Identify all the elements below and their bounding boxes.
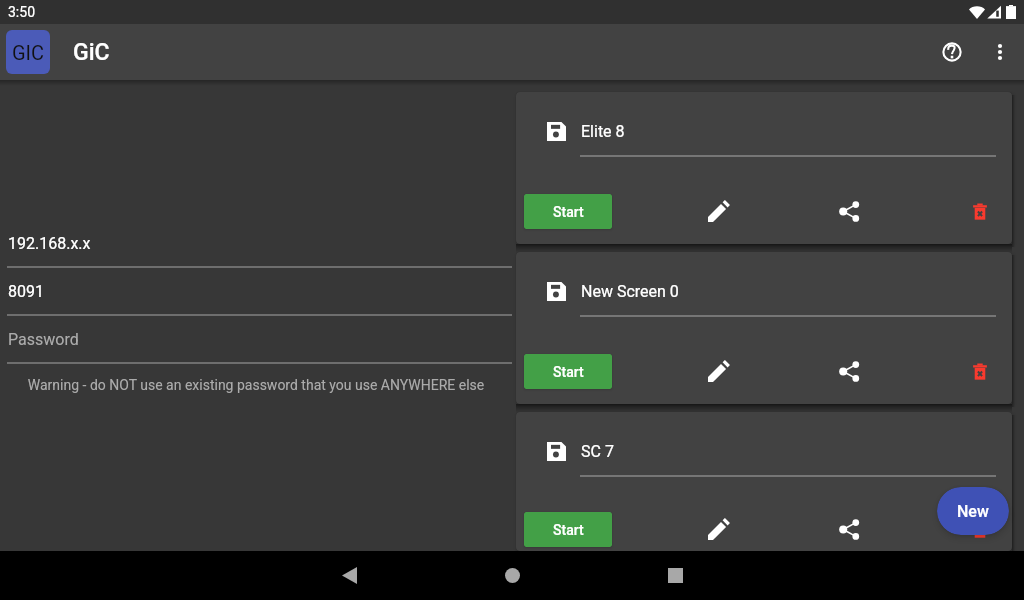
button[interactable]: Edit — [694, 347, 742, 395]
button[interactable]: Password — [0, 316, 516, 364]
staticText: New — [957, 502, 989, 521]
button[interactable]: New — [937, 487, 1009, 535]
staticText: SC 7 — [581, 442, 614, 461]
button[interactable]: Help — [928, 28, 976, 76]
button[interactable]: Delete — [956, 187, 1004, 235]
staticText: Start — [553, 522, 584, 538]
staticText: Password — [8, 330, 79, 349]
staticText: GiC — [73, 39, 110, 66]
button[interactable]: More options — [976, 28, 1024, 76]
staticText: GIC — [12, 41, 45, 64]
button[interactable]: 8091 — [0, 268, 516, 316]
staticText: Start — [553, 204, 584, 220]
staticText: 8091 — [8, 282, 44, 301]
staticText: 192.168.x.x — [8, 234, 91, 253]
button[interactable]: Share — [825, 187, 873, 235]
button[interactable]: Recent apps — [620, 551, 730, 600]
button[interactable]: Share — [825, 507, 873, 551]
button[interactable]: SC 7 — [516, 412, 1012, 551]
button[interactable]: Edit — [694, 187, 742, 235]
staticText: 3:50 — [8, 4, 35, 20]
button[interactable]: 192.168.x.x — [0, 220, 516, 268]
staticText: Warning - do NOT use an existing passwor… — [0, 377, 512, 393]
staticText: New Screen 0 — [581, 282, 679, 301]
button[interactable]: Start — [524, 354, 612, 389]
button[interactable]: Delete — [956, 507, 1004, 551]
staticText: Elite 8 — [581, 122, 625, 141]
button[interactable]: New Screen 0 — [516, 252, 1012, 404]
button[interactable]: Start — [524, 512, 612, 547]
button[interactable]: Edit — [694, 507, 742, 551]
button[interactable]: Elite 8 — [516, 92, 1012, 244]
button[interactable]: Start — [524, 194, 612, 229]
button[interactable]: Delete — [956, 347, 1004, 395]
staticText: Start — [553, 364, 584, 380]
button[interactable]: Share — [825, 347, 873, 395]
button[interactable]: Home — [457, 551, 567, 600]
button[interactable]: App icon — [6, 30, 50, 74]
button[interactable]: Back — [294, 551, 404, 600]
